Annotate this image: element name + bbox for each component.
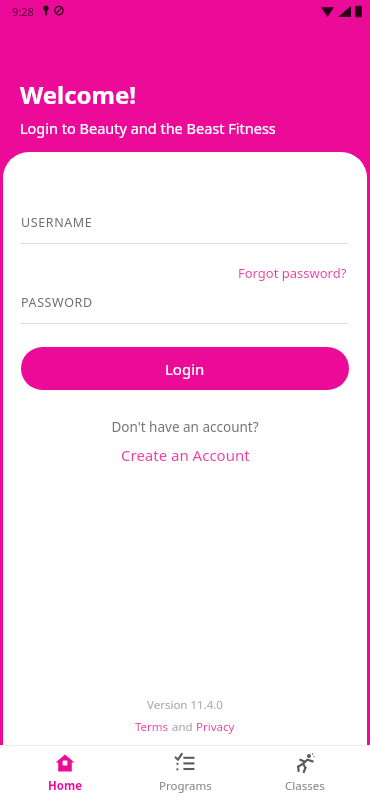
other: Classes	[295, 753, 315, 773]
staticText: Version 11.4.0	[147, 697, 223, 713]
staticText: Home	[48, 778, 83, 794]
staticText: Programs	[159, 778, 212, 794]
staticText: Don't have an account?	[111, 418, 259, 436]
button[interactable]: Home	[10, 746, 120, 800]
button[interactable]: Login	[21, 347, 349, 390]
staticText: Welcome!	[20, 78, 137, 111]
staticText: Login to Beauty and the Beast Fitness	[20, 118, 276, 138]
staticText: Login	[165, 359, 205, 379]
staticText: and	[169, 719, 196, 735]
staticText: 9:28	[12, 4, 34, 19]
button[interactable]: Forgot password?	[236, 262, 349, 284]
button[interactable]: Terms	[135, 719, 169, 735]
button[interactable]: Classes	[250, 746, 360, 800]
button[interactable]: Privacy	[196, 719, 235, 735]
button[interactable]: Create an Account	[117, 443, 254, 467]
other: Programs	[175, 753, 195, 773]
button[interactable]: PASSWORD	[21, 294, 93, 311]
staticText: Classes	[285, 778, 325, 794]
button[interactable]: USERNAME	[21, 214, 93, 231]
other: Home	[55, 753, 75, 773]
button[interactable]: Programs	[130, 746, 240, 800]
